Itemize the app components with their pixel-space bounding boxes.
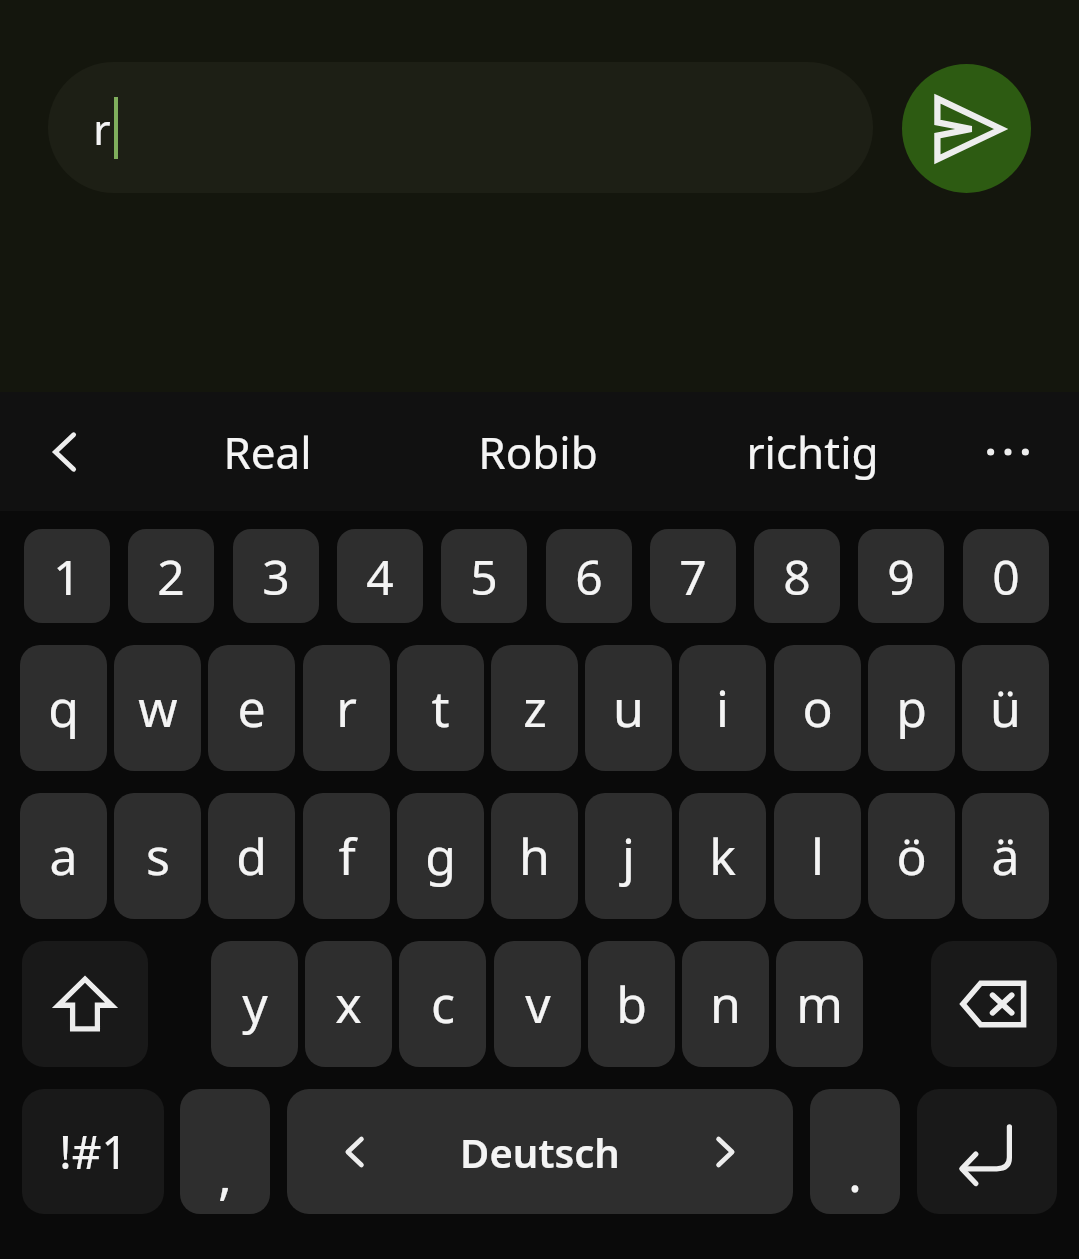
staticText: h — [519, 822, 550, 890]
staticText: , — [218, 1138, 232, 1209]
staticText: n — [710, 970, 741, 1038]
staticText: Robib — [478, 422, 598, 482]
button[interactable]: z — [491, 645, 578, 771]
button[interactable]: w — [114, 645, 201, 771]
button[interactable]: u — [585, 645, 672, 771]
button[interactable]: ä — [962, 793, 1049, 919]
button[interactable]: g — [397, 793, 484, 919]
staticText: ö — [896, 822, 927, 890]
staticText: e — [237, 674, 266, 742]
button[interactable]: Space, Deutsch — [287, 1089, 793, 1214]
staticText: u — [613, 674, 644, 742]
staticText: f — [338, 822, 356, 890]
staticText: b — [616, 970, 647, 1038]
staticText: v — [525, 970, 551, 1038]
button[interactable]: 0 — [963, 529, 1049, 623]
staticText: m — [796, 970, 843, 1038]
staticText: a — [49, 822, 78, 890]
staticText: 6 — [575, 544, 603, 609]
staticText: o — [802, 674, 833, 742]
button[interactable]: Message input — [48, 62, 873, 193]
staticText: 4 — [366, 544, 394, 609]
staticText: richtig — [746, 422, 879, 482]
button[interactable]: l — [774, 793, 861, 919]
staticText: t — [431, 674, 450, 742]
staticText: 3 — [262, 544, 290, 609]
staticText: x — [335, 970, 362, 1038]
staticText: 0 — [992, 544, 1020, 609]
staticText: c — [431, 970, 455, 1038]
button[interactable]: d — [208, 793, 295, 919]
button[interactable]: 7 — [650, 529, 736, 623]
button[interactable]: s — [114, 793, 201, 919]
button[interactable]: 3 — [233, 529, 319, 623]
button[interactable]: , — [180, 1089, 270, 1214]
staticText: z — [523, 674, 547, 742]
staticText: p — [896, 674, 927, 742]
button[interactable]: 9 — [858, 529, 944, 623]
staticText: l — [811, 822, 824, 890]
button[interactable]: t — [397, 645, 484, 771]
button[interactable]: Send — [902, 64, 1031, 193]
button[interactable]: 2 — [128, 529, 214, 623]
button[interactable]: m — [776, 941, 863, 1067]
button[interactable]: f — [303, 793, 390, 919]
button[interactable]: y — [211, 941, 298, 1067]
staticText: ä — [991, 822, 1020, 890]
button[interactable]: Enter — [917, 1089, 1057, 1214]
button[interactable]: 4 — [337, 529, 423, 623]
button[interactable]: v — [494, 941, 581, 1067]
button[interactable]: . — [810, 1089, 900, 1214]
staticText: j — [622, 822, 635, 890]
button[interactable]: !#1 — [22, 1089, 164, 1214]
button[interactable]: r — [303, 645, 390, 771]
button[interactable]: p — [868, 645, 955, 771]
staticText: Deutsch — [460, 1125, 620, 1179]
staticText: ü — [990, 674, 1021, 742]
staticText: d — [236, 822, 267, 890]
staticText: !#1 — [59, 1120, 128, 1183]
staticText: g — [425, 822, 456, 890]
button[interactable]: h — [491, 793, 578, 919]
button[interactable]: k — [679, 793, 766, 919]
button[interactable]: i — [679, 645, 766, 771]
button[interactable]: Robib — [420, 392, 655, 511]
button[interactable]: j — [585, 793, 672, 919]
staticText: . — [848, 1136, 862, 1207]
button[interactable]: Back — [18, 392, 112, 511]
button[interactable]: n — [682, 941, 769, 1067]
staticText: i — [716, 674, 729, 742]
button[interactable]: 1 — [24, 529, 110, 623]
button[interactable]: x — [305, 941, 392, 1067]
staticText: q — [48, 674, 79, 742]
button[interactable]: Real — [150, 392, 385, 511]
staticText: 2 — [157, 544, 185, 609]
button[interactable]: More options — [950, 392, 1065, 511]
button[interactable]: a — [20, 793, 107, 919]
staticText: 1 — [53, 544, 81, 609]
staticText: 5 — [470, 544, 498, 609]
button[interactable]: 8 — [754, 529, 840, 623]
button[interactable]: q — [20, 645, 107, 771]
button[interactable]: 6 — [546, 529, 632, 623]
staticText: k — [709, 822, 736, 890]
staticText: s — [146, 822, 170, 890]
button[interactable]: 5 — [441, 529, 527, 623]
button[interactable]: Shift — [22, 941, 148, 1067]
button[interactable]: b — [588, 941, 675, 1067]
button[interactable]: o — [774, 645, 861, 771]
staticText: 9 — [887, 544, 915, 609]
staticText: y — [242, 970, 268, 1038]
staticText: r — [336, 674, 357, 742]
button[interactable]: ö — [868, 793, 955, 919]
button[interactable]: ü — [962, 645, 1049, 771]
staticText: w — [138, 674, 178, 742]
button[interactable]: richtig — [695, 392, 930, 511]
staticText: Real — [223, 422, 312, 482]
button[interactable]: e — [208, 645, 295, 771]
staticText: 7 — [679, 544, 707, 609]
staticText: r — [93, 100, 111, 157]
staticText: 8 — [783, 544, 811, 609]
button[interactable]: c — [399, 941, 486, 1067]
button[interactable]: Backspace — [931, 941, 1057, 1067]
